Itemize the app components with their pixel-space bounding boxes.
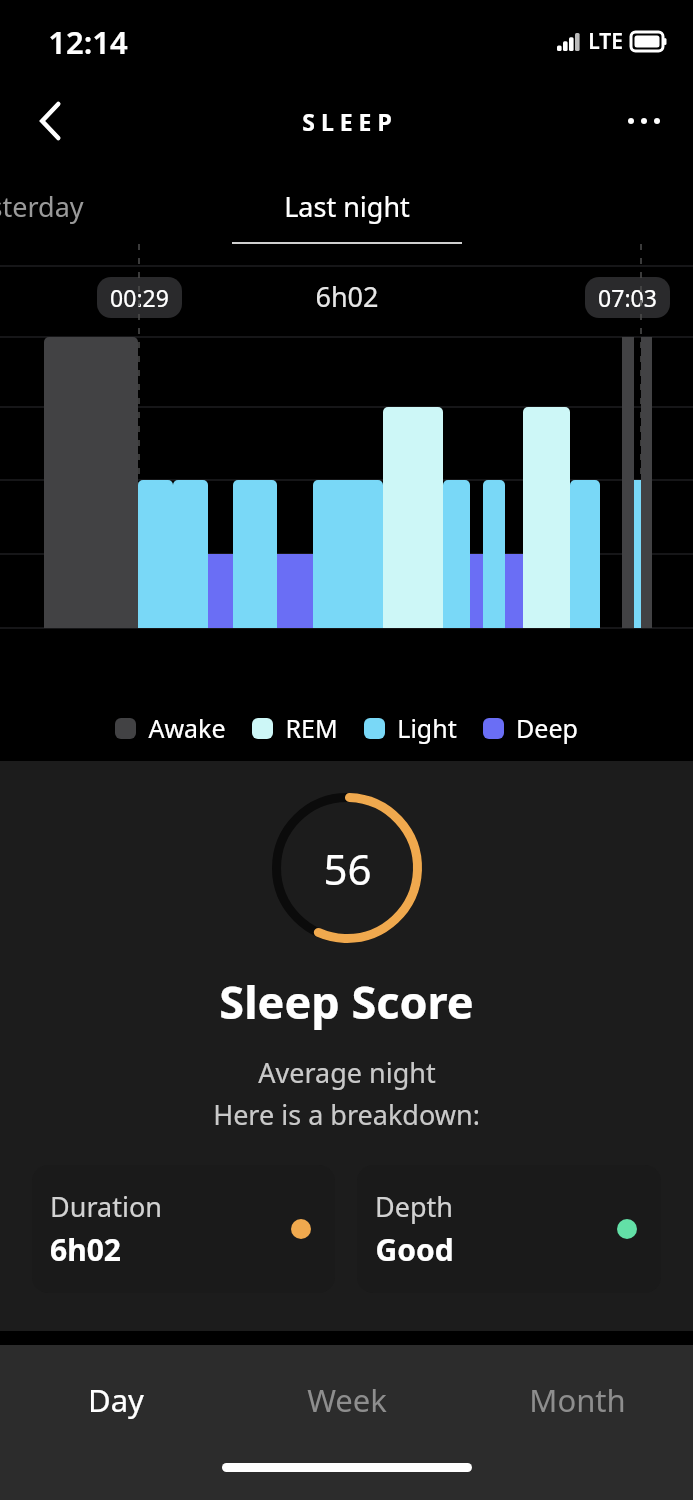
staticText: Light bbox=[397, 711, 457, 745]
button[interactable]: S L E E P bbox=[302, 106, 392, 137]
staticText: 00:29 bbox=[110, 282, 169, 313]
button[interactable]: Last night bbox=[284, 188, 410, 225]
staticText: Deep bbox=[516, 711, 578, 745]
staticText: 6h02 bbox=[50, 1229, 121, 1270]
button[interactable]: REM bbox=[252, 711, 338, 745]
staticText: Sleep Score bbox=[219, 971, 474, 1032]
staticText: Good bbox=[375, 1229, 454, 1270]
staticText: Average night bbox=[258, 1054, 436, 1091]
button[interactable]: Awake bbox=[115, 711, 226, 745]
staticText: 07:03 bbox=[598, 282, 657, 313]
staticText: Depth bbox=[375, 1188, 453, 1225]
staticText: Month bbox=[529, 1379, 626, 1421]
staticText: REM bbox=[285, 711, 338, 745]
staticText: Week bbox=[307, 1379, 387, 1421]
staticText: 56 bbox=[323, 840, 372, 897]
button[interactable]: Light bbox=[364, 711, 457, 745]
button[interactable]: 00:29 bbox=[110, 282, 169, 313]
staticText: Last night bbox=[284, 188, 410, 225]
staticText: 12:14 bbox=[48, 21, 128, 63]
staticText: Awake bbox=[148, 711, 226, 745]
button[interactable]: 07:03 bbox=[598, 282, 657, 313]
staticText: Here is a breakdown: bbox=[213, 1096, 480, 1133]
button[interactable]: Back bbox=[22, 92, 80, 150]
button[interactable]: Month bbox=[462, 1345, 693, 1455]
staticText: Duration bbox=[50, 1188, 162, 1225]
staticText: 6h02 bbox=[315, 278, 379, 315]
button[interactable]: Day bbox=[0, 1345, 231, 1455]
button[interactable]: Deep bbox=[483, 711, 578, 745]
button[interactable]: Yesterday bbox=[0, 188, 84, 225]
staticText: LTE bbox=[588, 27, 623, 56]
staticText: Day bbox=[88, 1379, 144, 1421]
staticText: S L E E P bbox=[302, 106, 392, 137]
button[interactable]: More options bbox=[615, 92, 673, 150]
button[interactable]: Depth bbox=[357, 1165, 661, 1293]
staticText: Yesterday bbox=[0, 188, 84, 225]
button[interactable]: Week bbox=[231, 1345, 462, 1455]
button[interactable]: Duration bbox=[32, 1165, 335, 1293]
